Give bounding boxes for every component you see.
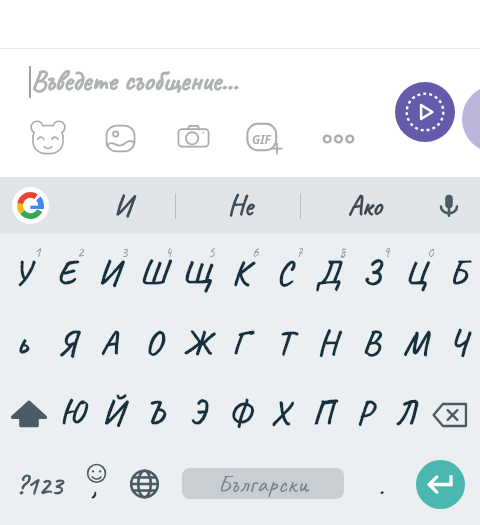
button[interactable]: Э <box>175 377 219 447</box>
button[interactable]: В <box>349 307 393 377</box>
staticText: З <box>362 251 381 294</box>
staticText: Ж <box>183 321 212 364</box>
staticText: М <box>403 321 428 364</box>
button[interactable]: И <box>87 237 131 307</box>
button[interactable]: Щ <box>175 237 219 307</box>
staticText: Б <box>449 251 467 294</box>
button[interactable]: Х <box>258 377 302 447</box>
button[interactable]: О <box>131 307 175 377</box>
staticText: Не <box>228 188 253 223</box>
staticText: Д <box>315 251 340 294</box>
staticText: Ако <box>348 188 382 223</box>
staticText: Э <box>189 391 206 434</box>
button[interactable]: Emoji <box>75 459 119 507</box>
staticText: 7 <box>296 243 303 261</box>
staticText: Е <box>57 251 76 294</box>
staticText: Ю <box>60 391 85 434</box>
button[interactable]: Camera <box>176 120 211 155</box>
staticText: П <box>312 391 333 434</box>
staticText: . <box>378 466 384 504</box>
button[interactable]: Й <box>91 377 135 447</box>
button[interactable]: Stickers <box>29 119 67 157</box>
staticText: 1 <box>34 243 41 261</box>
button[interactable]: Gallery <box>103 121 138 156</box>
button[interactable]: Ц <box>393 237 437 307</box>
button[interactable]: А <box>87 307 131 377</box>
button[interactable]: К <box>218 237 262 307</box>
button[interactable]: Я <box>44 307 88 377</box>
staticText: 5 <box>208 243 215 261</box>
staticText: Л <box>395 391 416 434</box>
staticText: Х <box>271 391 289 434</box>
staticText: В <box>362 321 380 364</box>
button[interactable]: . <box>360 463 402 507</box>
staticText: Ф <box>228 391 251 434</box>
button[interactable]: Ж <box>175 307 219 377</box>
staticText: ?123 <box>16 468 63 502</box>
staticText: Я <box>57 321 76 364</box>
button[interactable]: Voice input <box>429 186 469 226</box>
staticText: ь <box>16 321 28 364</box>
staticText: Ъ <box>145 391 165 434</box>
staticText: 3 <box>121 243 128 261</box>
staticText: Ш <box>139 251 167 294</box>
staticText: И <box>114 188 132 223</box>
staticText: 8 <box>339 243 346 261</box>
button[interactable]: И <box>70 185 175 226</box>
button[interactable]: Ю <box>50 377 94 447</box>
staticText: Щ <box>183 251 212 294</box>
button[interactable]: Shift <box>7 392 51 436</box>
button[interactable]: П <box>300 377 344 447</box>
button[interactable]: ?123 <box>12 463 67 507</box>
staticText: Ц <box>404 251 427 294</box>
staticText: И <box>98 251 120 294</box>
button[interactable]: Не <box>190 185 290 226</box>
button[interactable]: Ф <box>217 377 261 447</box>
button[interactable]: More options <box>319 126 358 152</box>
staticText: 4 <box>165 243 172 261</box>
staticText: 9 <box>383 243 390 261</box>
button[interactable]: Е <box>44 237 88 307</box>
staticText: Български <box>218 469 309 499</box>
button[interactable]: Ако <box>315 185 415 226</box>
staticText: Т <box>276 321 292 364</box>
staticText: Й <box>102 391 124 434</box>
button[interactable]: Ш <box>131 237 175 307</box>
staticText: , <box>91 467 97 505</box>
button[interactable]: Voice message <box>395 82 455 142</box>
staticText: Ч <box>449 321 467 364</box>
button[interactable]: Ч <box>436 307 480 377</box>
button[interactable]: З <box>349 237 393 307</box>
staticText: GIF <box>252 131 271 147</box>
staticText: 6 <box>252 243 259 261</box>
staticText: Р <box>356 391 373 434</box>
staticText: У <box>13 251 31 294</box>
staticText: Г <box>232 321 248 364</box>
button[interactable]: Backspace <box>429 393 471 437</box>
button[interactable]: Р <box>342 377 386 447</box>
button[interactable]: Google <box>12 187 49 224</box>
button[interactable]: Enter <box>416 460 465 509</box>
button[interactable]: Change language <box>126 463 163 505</box>
button[interactable]: Т <box>262 307 306 377</box>
staticText: О <box>145 321 162 364</box>
button[interactable]: ь <box>0 307 44 377</box>
staticText: 2 <box>77 243 84 261</box>
button[interactable]: GIF <box>245 119 285 159</box>
button[interactable]: М <box>393 307 437 377</box>
staticText: А <box>100 321 118 364</box>
button[interactable]: С <box>262 237 306 307</box>
staticText: Н <box>317 321 337 364</box>
button[interactable]: Л <box>383 377 427 447</box>
button[interactable]: Български <box>182 468 344 499</box>
button[interactable]: Ъ <box>133 377 177 447</box>
button[interactable]: Г <box>218 307 262 377</box>
staticText: 0 <box>427 243 434 261</box>
button[interactable]: Б <box>436 237 480 307</box>
button[interactable]: Д <box>305 237 349 307</box>
staticText: Въведете съобщение... <box>31 62 239 99</box>
staticText: С <box>276 251 293 294</box>
staticText: К <box>232 251 249 294</box>
button[interactable]: У <box>0 237 44 307</box>
button[interactable]: Н <box>305 307 349 377</box>
